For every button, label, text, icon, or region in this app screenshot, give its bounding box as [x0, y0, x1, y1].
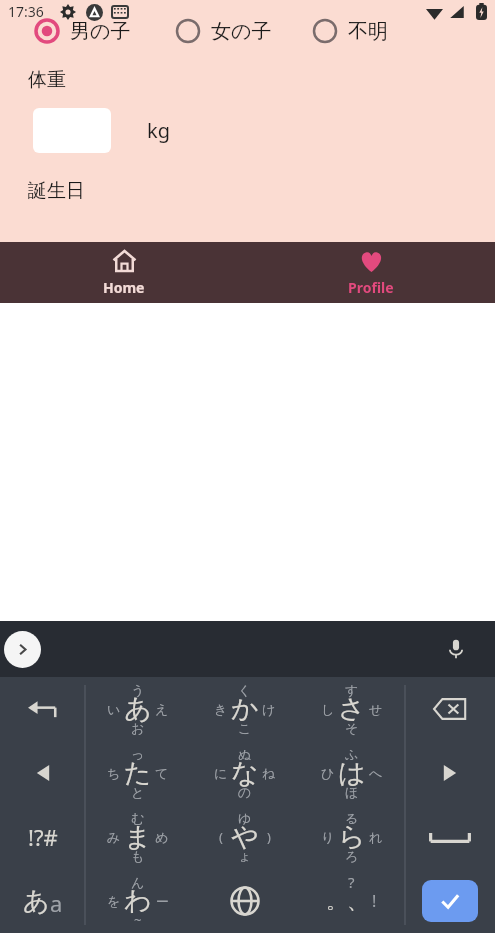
button[interactable]: Voice input: [439, 632, 473, 666]
staticText: ー: [156, 893, 169, 909]
button[interactable]: !?#: [0, 805, 85, 869]
staticText: へ: [369, 765, 383, 781]
staticText: を: [107, 893, 121, 909]
staticText: て: [155, 765, 169, 781]
button[interactable]: Expand suggestions: [4, 631, 41, 668]
staticText: き: [214, 701, 228, 717]
staticText: り: [321, 829, 335, 845]
staticText: ほ: [345, 784, 359, 800]
staticText: そ: [345, 720, 359, 736]
staticText: さ: [338, 692, 366, 726]
staticText: !?#: [28, 822, 58, 852]
staticText: み: [107, 829, 121, 845]
button[interactable]: Change language: [191, 869, 298, 933]
staticText: (: [219, 828, 223, 846]
staticText: れ: [369, 829, 383, 845]
staticText: 不明: [348, 19, 388, 44]
staticText: ん: [131, 874, 145, 890]
button[interactable]: あ: [85, 677, 191, 741]
other: Profile: [359, 249, 384, 274]
staticText: 男の子: [70, 19, 131, 44]
button[interactable]: Cursor right: [405, 741, 495, 805]
staticText: 女の子: [211, 19, 272, 44]
staticText: 。: [326, 888, 347, 914]
button[interactable]: あ: [0, 869, 85, 933]
staticText: Profile: [348, 278, 394, 297]
staticText: の: [238, 784, 252, 800]
button[interactable]: わ: [85, 869, 191, 933]
staticText: ろ: [345, 848, 359, 864]
staticText: 体重: [28, 68, 66, 92]
staticText: kg: [147, 117, 170, 144]
staticText: う: [131, 682, 145, 698]
staticText: け: [262, 701, 276, 717]
button[interactable]: Cursor left: [0, 741, 85, 805]
button[interactable]: 不明: [312, 18, 388, 44]
staticText: む: [131, 810, 145, 826]
staticText: ょ: [238, 848, 252, 864]
staticText: し: [321, 701, 335, 717]
button[interactable]: た: [85, 741, 191, 805]
staticText: る: [345, 810, 359, 826]
button[interactable]: Profile: [247, 242, 495, 303]
staticText: ?: [348, 872, 355, 892]
button[interactable]: や: [191, 805, 298, 869]
staticText: は: [338, 756, 366, 790]
staticText: Home: [103, 278, 145, 297]
staticText: あ: [124, 692, 152, 726]
staticText: 、: [347, 888, 368, 914]
button[interactable]: は: [298, 741, 405, 805]
button[interactable]: な: [191, 741, 298, 805]
staticText: せ: [369, 701, 383, 717]
staticText: い: [107, 701, 121, 717]
staticText: こ: [238, 720, 252, 736]
staticText: a: [50, 888, 63, 918]
staticText: ふ: [345, 746, 359, 762]
button[interactable]: さ: [298, 677, 405, 741]
staticText: !: [372, 890, 377, 912]
staticText: え: [155, 701, 169, 717]
button[interactable]: Enter: [422, 880, 478, 922]
button[interactable]: 女の子: [175, 18, 272, 44]
staticText: 17:36: [8, 2, 44, 21]
button[interactable]: ま: [85, 805, 191, 869]
button[interactable]: か: [191, 677, 298, 741]
staticText: ): [267, 828, 271, 846]
button[interactable]: Space: [405, 805, 495, 869]
staticText: ひ: [321, 765, 335, 781]
button[interactable]: [33, 108, 111, 153]
button[interactable]: ら: [298, 805, 405, 869]
button[interactable]: ?: [298, 869, 405, 933]
staticText: ね: [262, 765, 276, 781]
staticText: と: [131, 784, 145, 800]
staticText: め: [155, 829, 169, 845]
button[interactable]: undo: [0, 677, 85, 741]
staticText: く: [238, 682, 252, 698]
staticText: や: [231, 820, 259, 854]
other: Home: [112, 249, 137, 274]
other: Change language: [230, 886, 260, 916]
staticText: っ: [131, 746, 145, 762]
staticText: わ: [124, 884, 152, 918]
button[interactable]: Delete: [405, 677, 495, 741]
staticText: ら: [338, 820, 366, 854]
staticText: ゆ: [238, 810, 252, 826]
staticText: 誕生日: [28, 179, 85, 203]
staticText: ~: [134, 911, 142, 929]
staticText: ま: [124, 820, 152, 854]
button[interactable]: Home: [0, 242, 247, 303]
staticText: も: [131, 848, 145, 864]
button[interactable]: 男の子: [34, 18, 131, 44]
staticText: す: [345, 682, 359, 698]
staticText: た: [124, 756, 152, 790]
staticText: ち: [107, 765, 121, 781]
staticText: か: [231, 692, 259, 726]
staticText: な: [231, 756, 259, 790]
staticText: ぬ: [238, 746, 252, 762]
staticText: に: [214, 765, 228, 781]
staticText: あ: [23, 885, 50, 918]
staticText: お: [131, 720, 145, 736]
